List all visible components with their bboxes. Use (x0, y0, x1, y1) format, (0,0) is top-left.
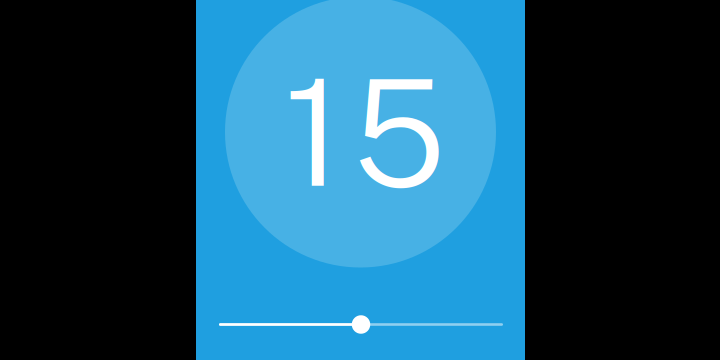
button[interactable]: Value slider (219, 312, 503, 336)
staticText: 15 (283, 46, 445, 219)
